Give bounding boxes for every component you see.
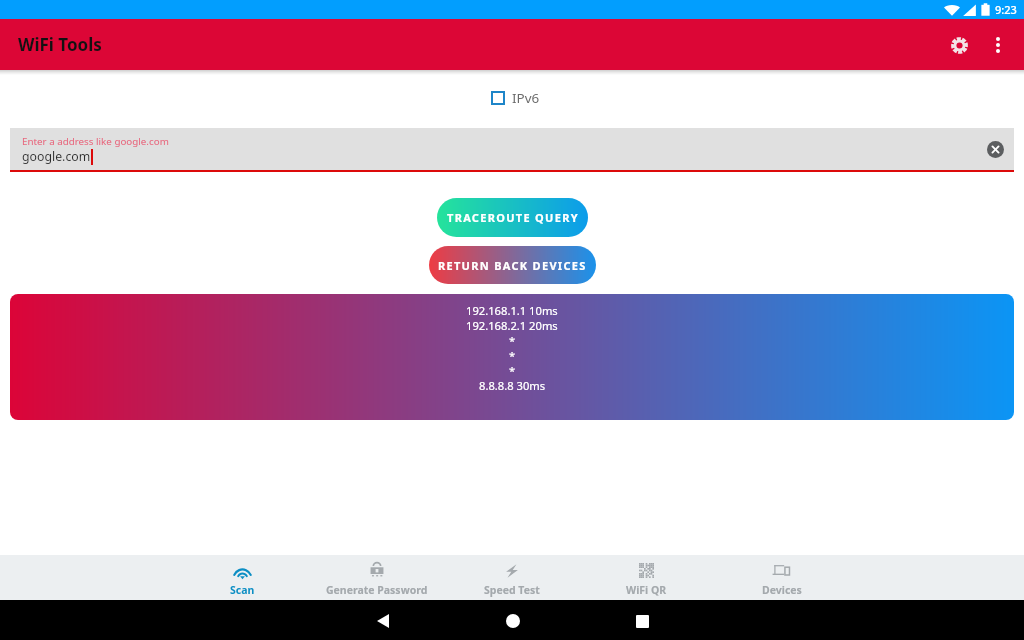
button[interactable]: RETURN BACK DEVICES: [429, 246, 596, 284]
button[interactable]: Settings: [943, 21, 976, 69]
staticText: *: [509, 363, 516, 378]
button[interactable]: Scan: [175, 555, 309, 600]
staticText: RETURN BACK DEVICES: [438, 258, 587, 273]
button[interactable]: Generate Password: [309, 555, 444, 600]
staticText: WiFi QR: [626, 583, 667, 597]
button[interactable]: Clear text: [984, 138, 1006, 160]
button[interactable]: TRACEROUTE QUERY: [437, 198, 588, 237]
staticText: IPv6: [512, 89, 540, 107]
button[interactable]: IPv6: [483, 85, 548, 111]
staticText: *: [509, 348, 516, 363]
staticText: TRACEROUTE QUERY: [447, 210, 579, 225]
staticText: *: [509, 333, 516, 348]
staticText: 9:23: [995, 2, 1017, 17]
button[interactable]: Back: [368, 606, 398, 636]
button[interactable]: Speed Test: [444, 555, 579, 600]
staticText: Speed Test: [484, 583, 540, 597]
staticText: Enter a address like google.com: [22, 135, 169, 148]
staticText: Generate Password: [326, 583, 428, 597]
staticText: 192.168.1.1 10ms: [466, 303, 558, 318]
button[interactable]: More options: [976, 21, 1020, 69]
staticText: Devices: [762, 583, 802, 597]
staticText: google.com: [22, 148, 91, 165]
button[interactable]: Enter a address like google.com: [10, 128, 1014, 170]
button[interactable]: WiFi QR: [579, 555, 714, 600]
button[interactable]: Devices: [714, 555, 849, 600]
staticText: Scan: [230, 583, 255, 597]
staticText: 8.8.8.8 30ms: [479, 378, 546, 393]
staticText: WiFi Tools: [18, 33, 102, 56]
staticText: 192.168.2.1 20ms: [466, 318, 558, 333]
button[interactable]: Home: [498, 606, 528, 636]
button[interactable]: Recents: [627, 606, 657, 636]
